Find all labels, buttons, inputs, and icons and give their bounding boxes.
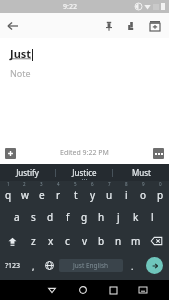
button[interactable]: a xyxy=(8,205,25,229)
button[interactable]: b xyxy=(93,229,110,253)
button[interactable]: z xyxy=(25,229,42,253)
button[interactable]: 5 xyxy=(67,181,84,205)
staticText: , xyxy=(32,260,35,272)
button[interactable]: d xyxy=(42,205,59,229)
button[interactable]: 0 xyxy=(152,181,169,205)
staticText: o xyxy=(140,188,147,202)
button[interactable]: Period xyxy=(125,253,140,278)
staticText: r xyxy=(56,188,61,202)
button[interactable]: g xyxy=(76,205,93,229)
button[interactable]: 4 xyxy=(50,181,67,205)
button[interactable]: 9 xyxy=(135,181,152,205)
staticText: 1 xyxy=(7,181,10,187)
staticText: i xyxy=(125,188,128,202)
staticText: u xyxy=(106,188,113,202)
button[interactable]: Justice xyxy=(56,164,112,181)
staticText: 5 xyxy=(74,181,77,187)
staticText: j xyxy=(117,210,120,224)
button[interactable]: l xyxy=(144,205,161,229)
staticText: b xyxy=(98,234,105,248)
button[interactable]: Pin xyxy=(98,15,120,37)
staticText: g xyxy=(81,210,88,224)
staticText: l xyxy=(151,210,154,224)
staticText: y xyxy=(90,188,96,202)
button[interactable]: k xyxy=(127,205,144,229)
staticText: 6 xyxy=(91,181,94,187)
button[interactable]: Back xyxy=(0,13,25,38)
staticText: Note xyxy=(10,67,31,79)
staticText: 4 xyxy=(57,181,60,187)
staticText: Justice xyxy=(72,167,97,178)
staticText: d xyxy=(47,210,54,224)
button[interactable]: Back xyxy=(36,280,67,300)
button[interactable]: Shift xyxy=(0,229,25,253)
button[interactable]: Keyboard indicator xyxy=(129,280,157,300)
staticText: Edited 9:22 PM xyxy=(60,148,109,158)
staticText: 0 xyxy=(159,181,162,187)
button[interactable]: x xyxy=(42,229,59,253)
button[interactable]: Change language xyxy=(41,253,57,278)
button[interactable]: Home xyxy=(67,280,98,300)
button[interactable]: Enter xyxy=(146,257,163,274)
staticText: 9 xyxy=(142,181,145,187)
button[interactable]: j xyxy=(110,205,127,229)
button[interactable]: 3 xyxy=(33,181,50,205)
staticText: Just English xyxy=(73,261,109,270)
button[interactable]: n xyxy=(110,229,127,253)
staticText: p xyxy=(157,188,164,202)
staticText: 3 xyxy=(40,181,43,187)
staticText: m xyxy=(131,234,141,248)
button[interactable]: Must xyxy=(113,164,169,181)
button[interactable]: Recent apps xyxy=(98,280,129,300)
button[interactable]: 7 xyxy=(101,181,118,205)
staticText: k xyxy=(133,210,139,224)
button[interactable]: ?123 xyxy=(0,253,26,278)
staticText: . xyxy=(131,260,134,272)
button[interactable]: Backspace xyxy=(144,229,169,253)
button[interactable]: 2 xyxy=(16,181,33,205)
staticText: h xyxy=(98,210,105,224)
staticText: q xyxy=(5,188,12,202)
staticText: Justify xyxy=(16,167,39,178)
button[interactable]: More options xyxy=(153,148,164,159)
staticText: t xyxy=(74,188,78,202)
button[interactable]: 8 xyxy=(118,181,135,205)
button[interactable]: h xyxy=(93,205,110,229)
staticText: 7 xyxy=(108,181,111,187)
staticText: a xyxy=(14,210,20,224)
staticText: e xyxy=(39,188,45,202)
button[interactable]: 6 xyxy=(84,181,101,205)
button[interactable]: Reminder xyxy=(120,15,142,37)
staticText: w xyxy=(21,188,29,202)
button[interactable]: Archive xyxy=(142,13,167,38)
button[interactable]: f xyxy=(59,205,76,229)
button[interactable]: c xyxy=(59,229,76,253)
button[interactable]: m xyxy=(127,229,144,253)
staticText: z xyxy=(31,234,36,248)
staticText: 2 xyxy=(23,181,26,187)
staticText: v xyxy=(82,234,88,248)
button[interactable]: Justify xyxy=(0,164,55,181)
button[interactable]: Add xyxy=(5,148,16,159)
staticText: Just xyxy=(10,46,32,61)
button[interactable]: v xyxy=(76,229,93,253)
staticText: x xyxy=(48,234,54,248)
staticText: n xyxy=(115,234,122,248)
staticText: Must xyxy=(132,167,151,178)
button[interactable]: Comma xyxy=(26,253,41,278)
button[interactable]: Just English xyxy=(59,259,123,272)
button[interactable]: 1 xyxy=(0,181,16,205)
staticText: c xyxy=(65,234,70,248)
staticText: f xyxy=(66,210,70,224)
staticText: 8 xyxy=(125,181,128,187)
staticText: 9:22 xyxy=(63,2,77,12)
button[interactable]: s xyxy=(25,205,42,229)
staticText: s xyxy=(31,210,36,224)
staticText: ?123 xyxy=(5,261,21,271)
